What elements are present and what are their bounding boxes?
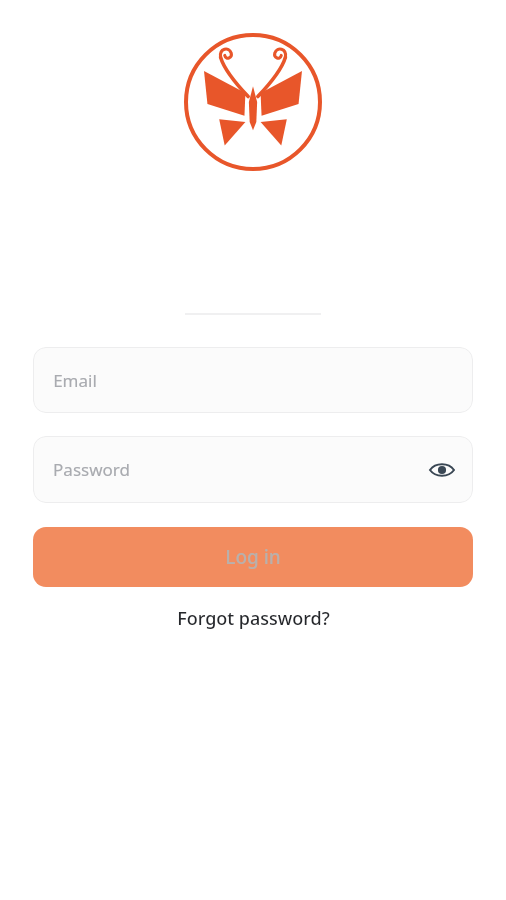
button[interactable]: Forgot password? [167, 602, 340, 635]
button[interactable]: Show password [425, 453, 459, 487]
button[interactable]: Password [33, 436, 473, 503]
button[interactable]: Log in [33, 527, 473, 587]
button[interactable]: Email [33, 347, 473, 413]
staticText: Log in [225, 544, 281, 570]
staticText: Forgot password? [177, 606, 330, 631]
staticText: Password [53, 458, 130, 481]
staticText: Email [53, 369, 97, 392]
